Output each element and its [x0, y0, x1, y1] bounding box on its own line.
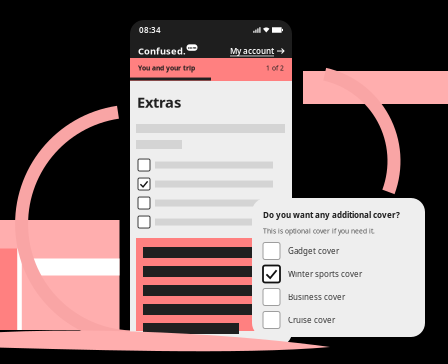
button[interactable]: Cruise cover [263, 311, 418, 329]
staticText: My account [230, 46, 274, 56]
button[interactable]: Gadget cover [263, 242, 418, 260]
staticText: Business cover [288, 292, 345, 302]
staticText: Confused. [138, 45, 186, 57]
staticText: com [187, 45, 196, 50]
staticText: 08:34 [139, 25, 161, 35]
staticText: 1 of 2 [266, 64, 284, 72]
staticText: You and your trip [138, 64, 195, 72]
staticText: Cruise cover [288, 315, 335, 325]
staticText: This is optional cover if you need it. [263, 227, 375, 235]
staticText: Extras [137, 92, 181, 112]
button[interactable]: Business cover [263, 288, 418, 306]
button[interactable]: My account [230, 46, 284, 56]
staticText: Winter sports cover [288, 269, 362, 279]
button[interactable]: Winter sports cover [263, 265, 418, 283]
staticText: Do you want any additional cover? [263, 210, 400, 220]
staticText: Gadget cover [288, 246, 339, 256]
